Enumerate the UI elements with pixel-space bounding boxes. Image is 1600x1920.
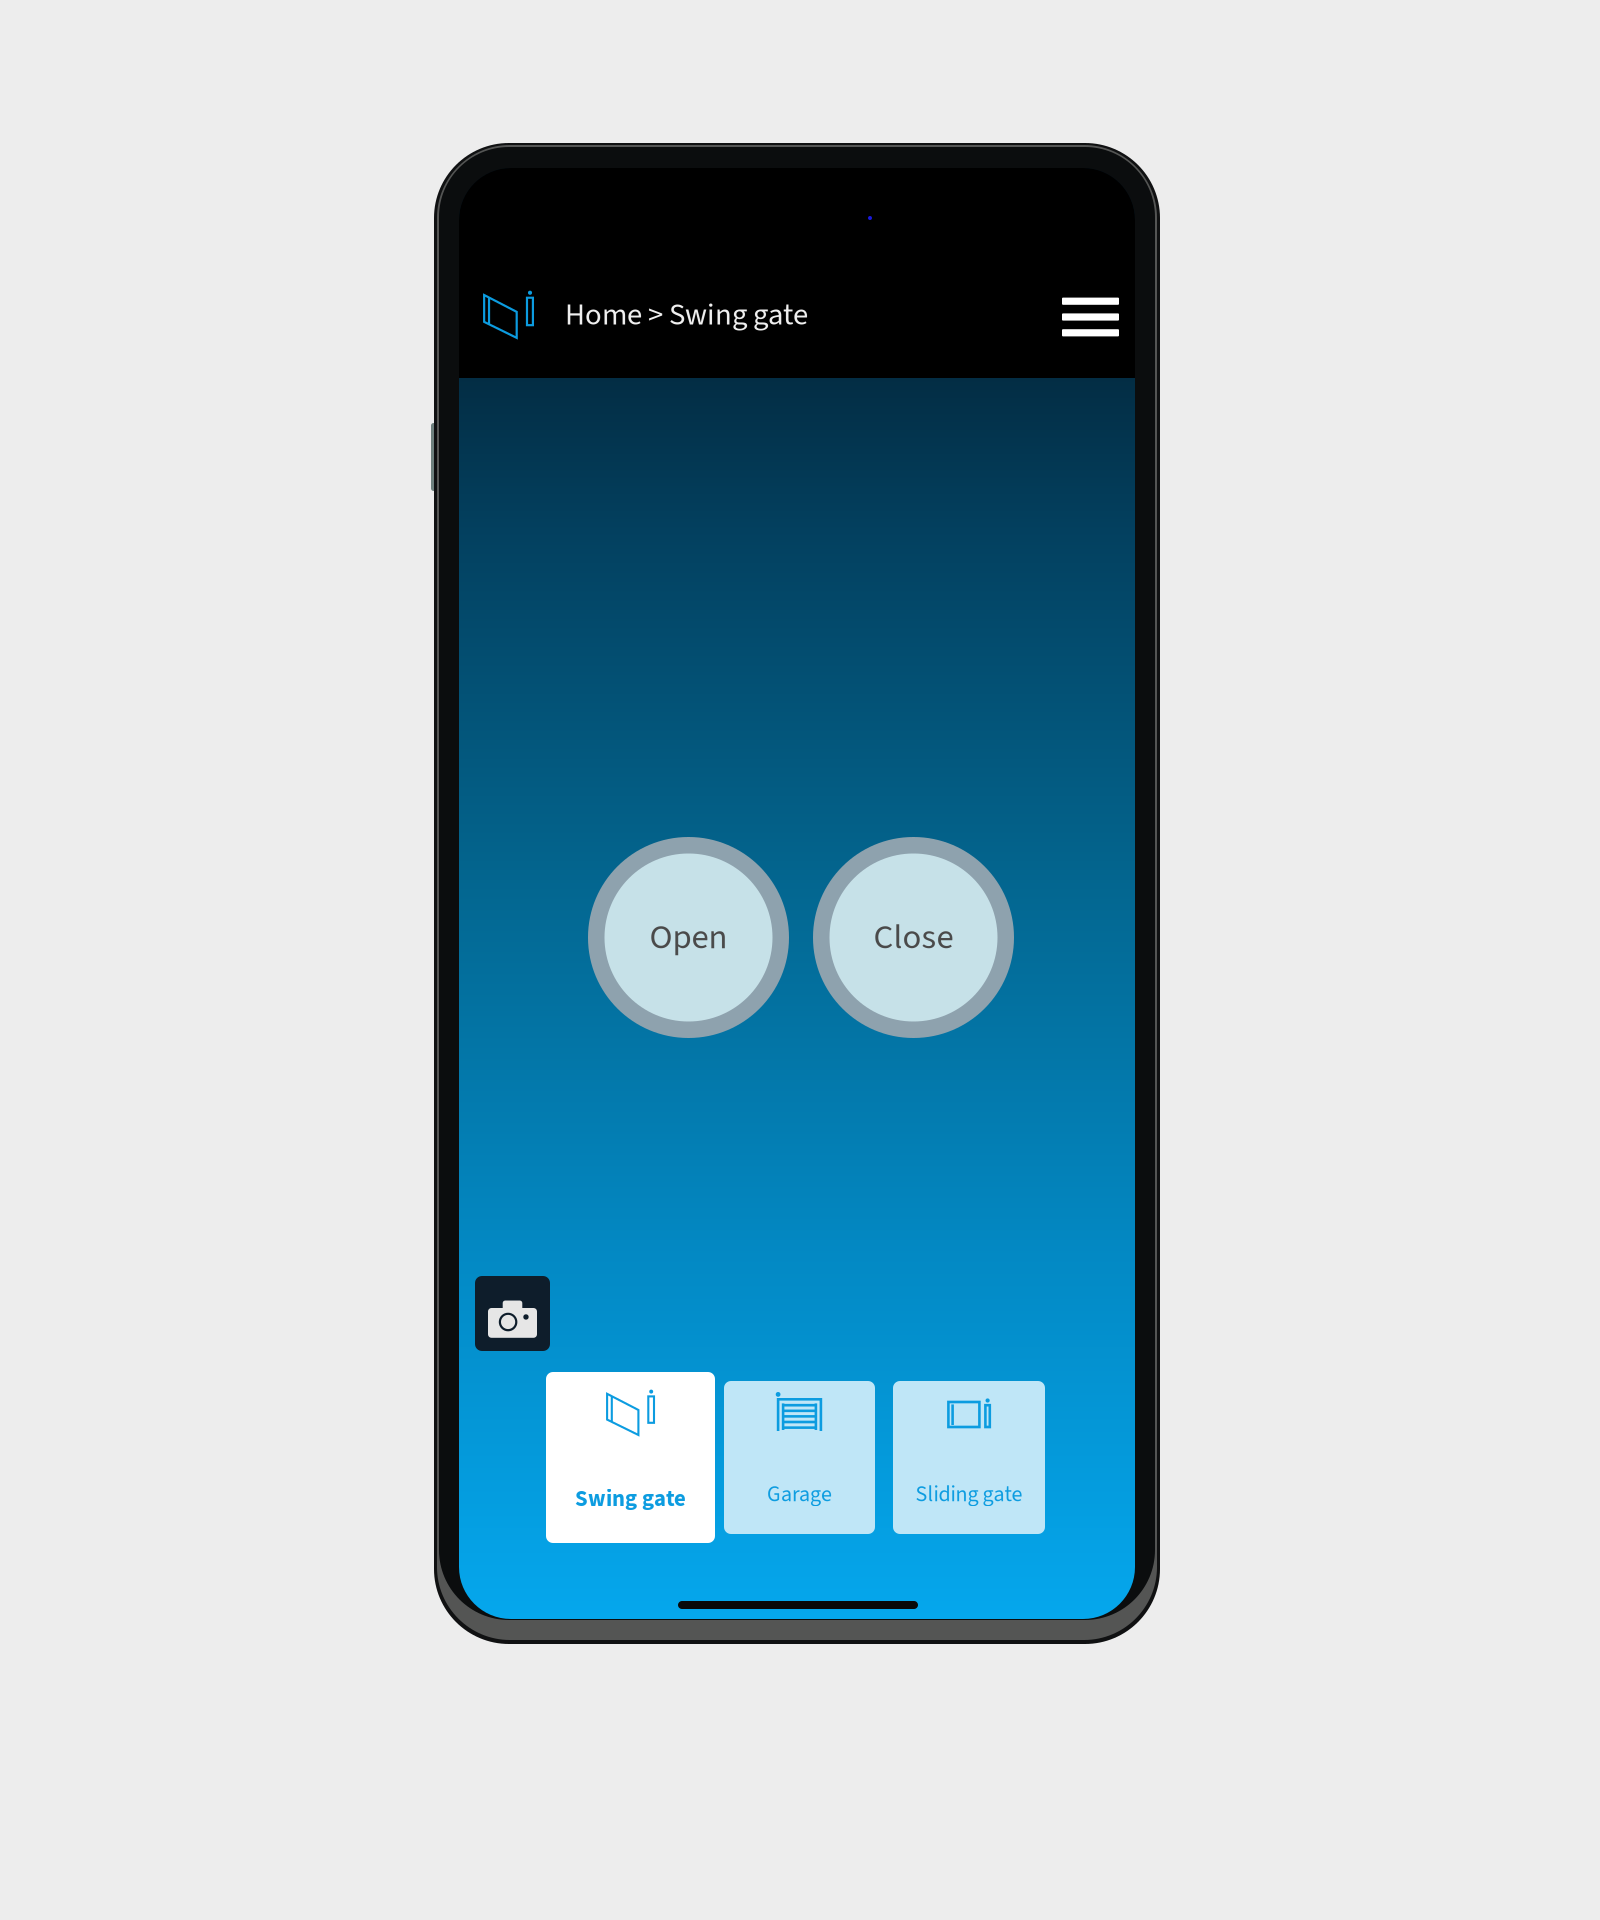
- staticText: Open: [649, 913, 727, 962]
- button[interactable]: Swing gate: [546, 1372, 715, 1543]
- button[interactable]: Menu: [1053, 286, 1128, 348]
- staticText: Close: [873, 913, 953, 962]
- button[interactable]: Camera: [475, 1276, 550, 1351]
- staticText: Home > Swing gate: [565, 293, 808, 337]
- button[interactable]: Close: [813, 837, 1014, 1038]
- staticText: Swing gate: [575, 1483, 686, 1515]
- button[interactable]: Sliding gate: [893, 1381, 1045, 1534]
- button[interactable]: Open: [588, 837, 789, 1038]
- button[interactable]: Garage: [724, 1381, 875, 1534]
- staticText: Garage: [767, 1479, 832, 1510]
- staticText: Sliding gate: [915, 1479, 1022, 1510]
